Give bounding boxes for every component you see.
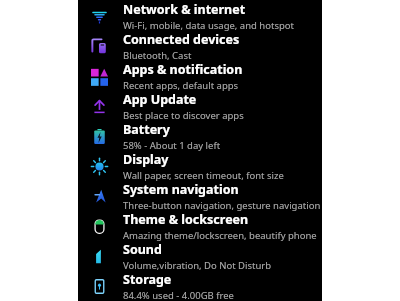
- staticText: Wi-Fi, mobile, data usage, and hotspot: [123, 19, 294, 31]
- staticText: Amazing theme/lockscreen, beautify phone: [123, 229, 317, 241]
- button[interactable]: Battery: [78, 121, 322, 151]
- staticText: Wall paper, screen timeout, font size: [123, 169, 284, 181]
- other: Storage: [89, 276, 109, 296]
- button[interactable]: Connected devices: [78, 31, 322, 61]
- staticText: Apps & notification: [123, 61, 243, 78]
- staticText: Sound: [123, 241, 162, 258]
- staticText: Display: [123, 151, 169, 168]
- button[interactable]: Sound: [78, 241, 322, 271]
- other: Connected devices: [89, 36, 109, 56]
- other: System navigation: [89, 186, 109, 206]
- staticText: App Update: [123, 91, 197, 108]
- button[interactable]: Apps & notification: [78, 61, 322, 91]
- other: App Update: [89, 96, 109, 116]
- staticText: 84.4% used - 4.00GB free: [123, 289, 234, 301]
- button[interactable]: Storage: [78, 271, 322, 301]
- staticText: 58% - About 1 day left: [123, 139, 221, 151]
- other: Apps & notification: [89, 66, 109, 86]
- button[interactable]: App Update: [78, 91, 322, 121]
- button[interactable]: System navigation: [78, 181, 322, 211]
- other: Network & internet: [89, 6, 109, 26]
- staticText: System navigation: [123, 181, 239, 198]
- other: Display: [89, 156, 109, 176]
- other: Theme & lockscreen: [89, 216, 109, 236]
- other: Battery: [89, 126, 109, 146]
- staticText: Best place to discover apps: [123, 109, 244, 121]
- staticText: Connected devices: [123, 31, 240, 48]
- other: Sound: [89, 246, 109, 266]
- staticText: Three-button navigation, gesture navigat…: [123, 199, 321, 211]
- button[interactable]: Network & internet: [78, 1, 322, 31]
- staticText: Theme & lockscreen: [123, 211, 249, 228]
- staticText: Recent apps, default apps: [123, 79, 239, 91]
- button[interactable]: Theme & lockscreen: [78, 211, 322, 241]
- staticText: Volume,vibration, Do Not Disturb: [123, 259, 272, 271]
- staticText: Bluetooth, Cast: [123, 49, 192, 61]
- staticText: Storage: [123, 271, 172, 288]
- button[interactable]: Display: [78, 151, 322, 181]
- staticText: Network & internet: [123, 1, 246, 18]
- staticText: Battery: [123, 121, 170, 138]
